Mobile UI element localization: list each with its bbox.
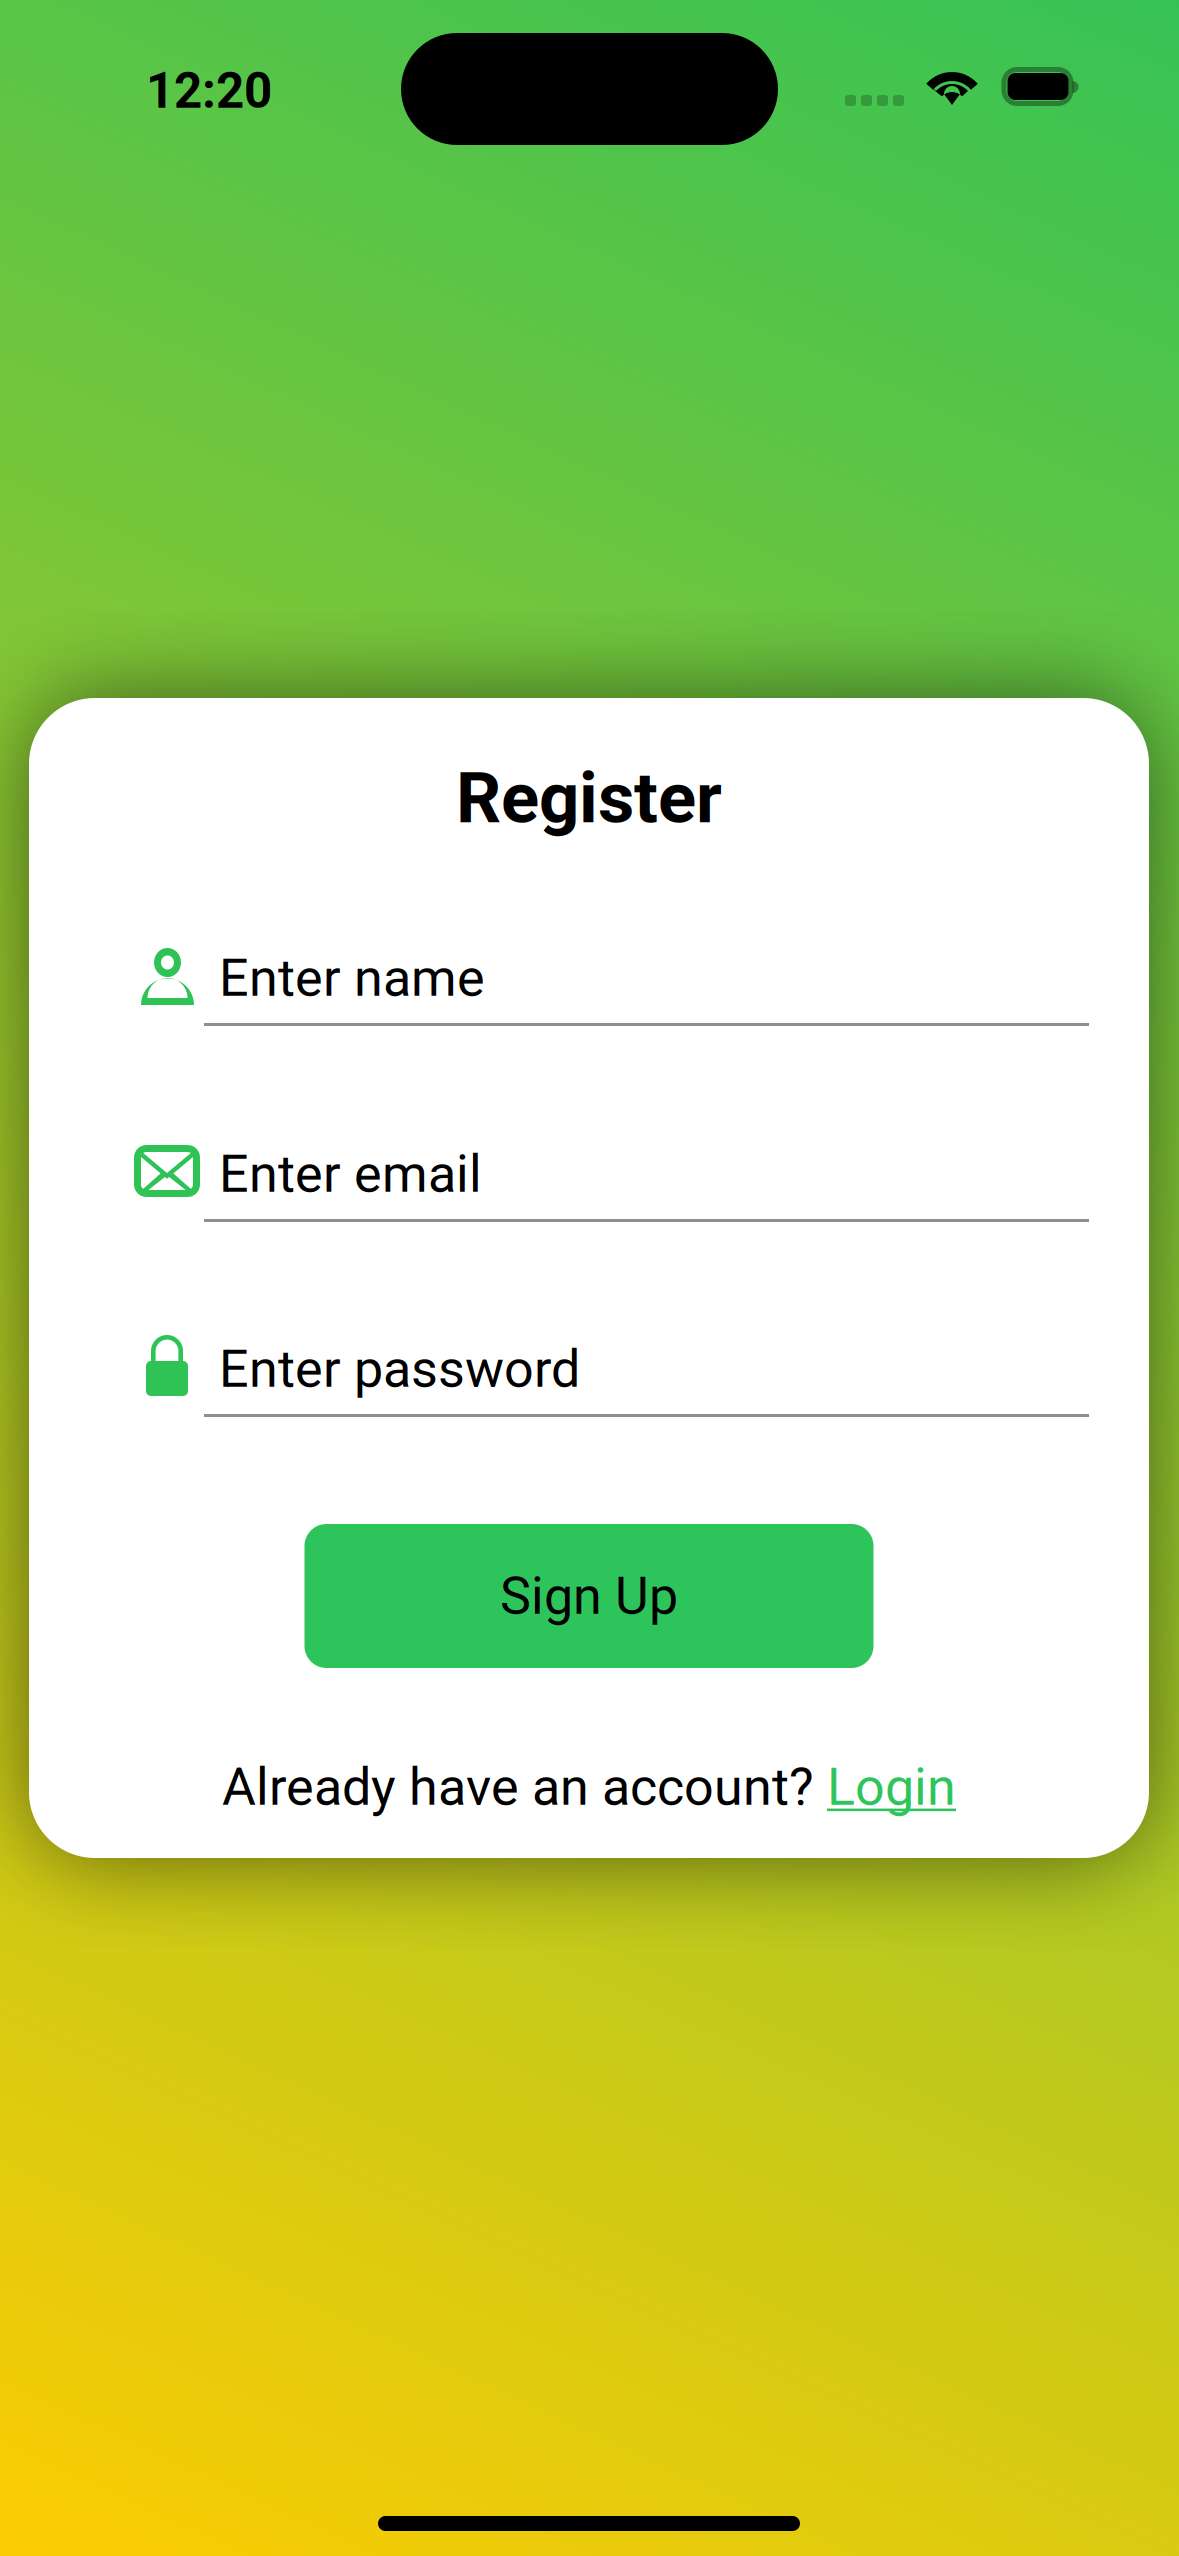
button[interactable]: Enter name [29, 935, 1149, 1026]
button[interactable]: Enter password [29, 1326, 1149, 1417]
button[interactable]: Sign Up [304, 1524, 873, 1668]
staticText: Enter email [219, 1143, 482, 1204]
staticText: Already have an account? [222, 1756, 827, 1817]
button[interactable]: Already have an account? [222, 1754, 956, 1820]
staticText: Sign Up [500, 1565, 678, 1626]
staticText: Enter password [219, 1338, 580, 1399]
staticText: Register [456, 757, 722, 839]
staticText: 12:20 [146, 62, 272, 120]
staticText: Login [827, 1756, 956, 1817]
staticText: Enter name [219, 947, 485, 1008]
button[interactable]: Enter email [29, 1131, 1149, 1222]
